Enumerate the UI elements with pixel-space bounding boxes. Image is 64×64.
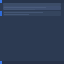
button[interactable]	[3, 6, 61, 10]
button[interactable]	[0, 11, 61, 16]
